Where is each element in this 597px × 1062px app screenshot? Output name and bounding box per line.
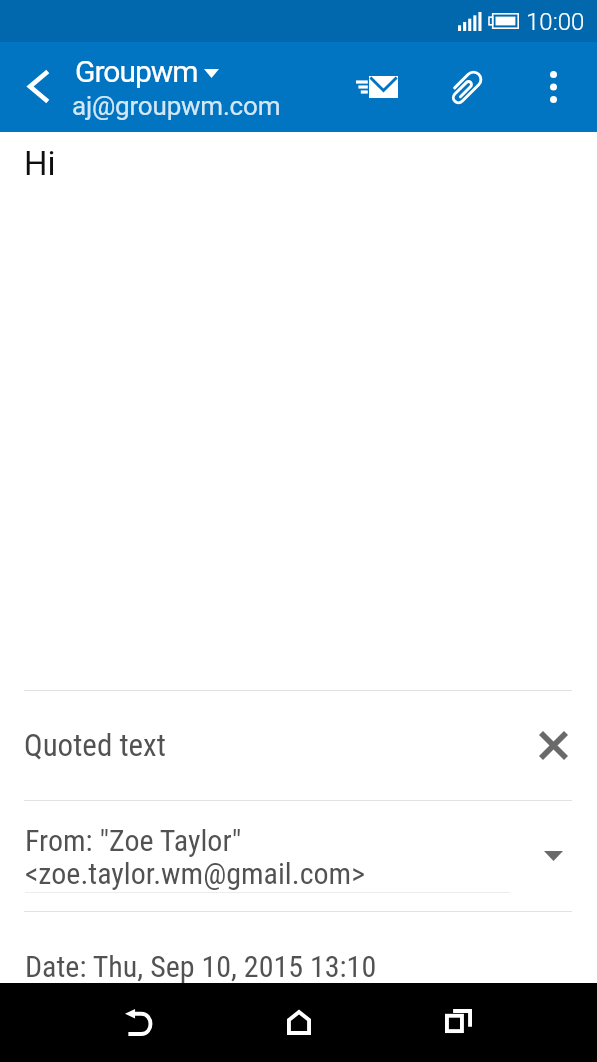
button[interactable]: More options [517, 42, 589, 132]
button[interactable]: Remove quoted text [516, 700, 590, 790]
button[interactable]: Quoted text [0, 690, 597, 800]
button[interactable]: Back [58, 983, 218, 1062]
staticText: Hi [24, 144, 56, 183]
button[interactable]: Navigate up [0, 42, 74, 132]
button[interactable]: Hi [0, 132, 597, 688]
staticText: Quoted text [24, 727, 166, 763]
staticText: Date: Thu, Sep 10, 2015 13:10 [25, 949, 377, 984]
button[interactable]: Home [218, 983, 379, 1062]
button[interactable]: Recent apps [379, 983, 539, 1062]
button[interactable]: Groupwm [70, 46, 298, 128]
button[interactable]: Expand recipient details [516, 811, 590, 901]
staticText: From: "Zoe Taylor" [25, 823, 242, 858]
staticText: 10:00 [526, 8, 585, 36]
button[interactable]: Attach file [428, 42, 504, 132]
button[interactable]: Send [335, 42, 419, 132]
staticText: aj@groupwm.com [72, 91, 281, 121]
staticText: <zoe.taylor.wm@gmail.com> [25, 856, 365, 891]
staticText: Groupwm [75, 54, 198, 89]
